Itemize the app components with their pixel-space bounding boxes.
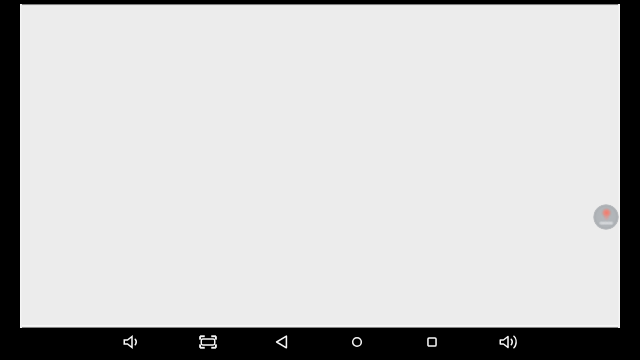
button[interactable]: Resize: [193, 327, 223, 357]
button[interactable]: Recents: [417, 327, 447, 357]
button[interactable]: Back: [267, 327, 297, 357]
button[interactable]: Volume down: [117, 327, 147, 357]
button[interactable]: Open maps: [593, 204, 619, 230]
button[interactable]: Home: [342, 327, 372, 357]
button[interactable]: Volume up: [493, 327, 523, 357]
